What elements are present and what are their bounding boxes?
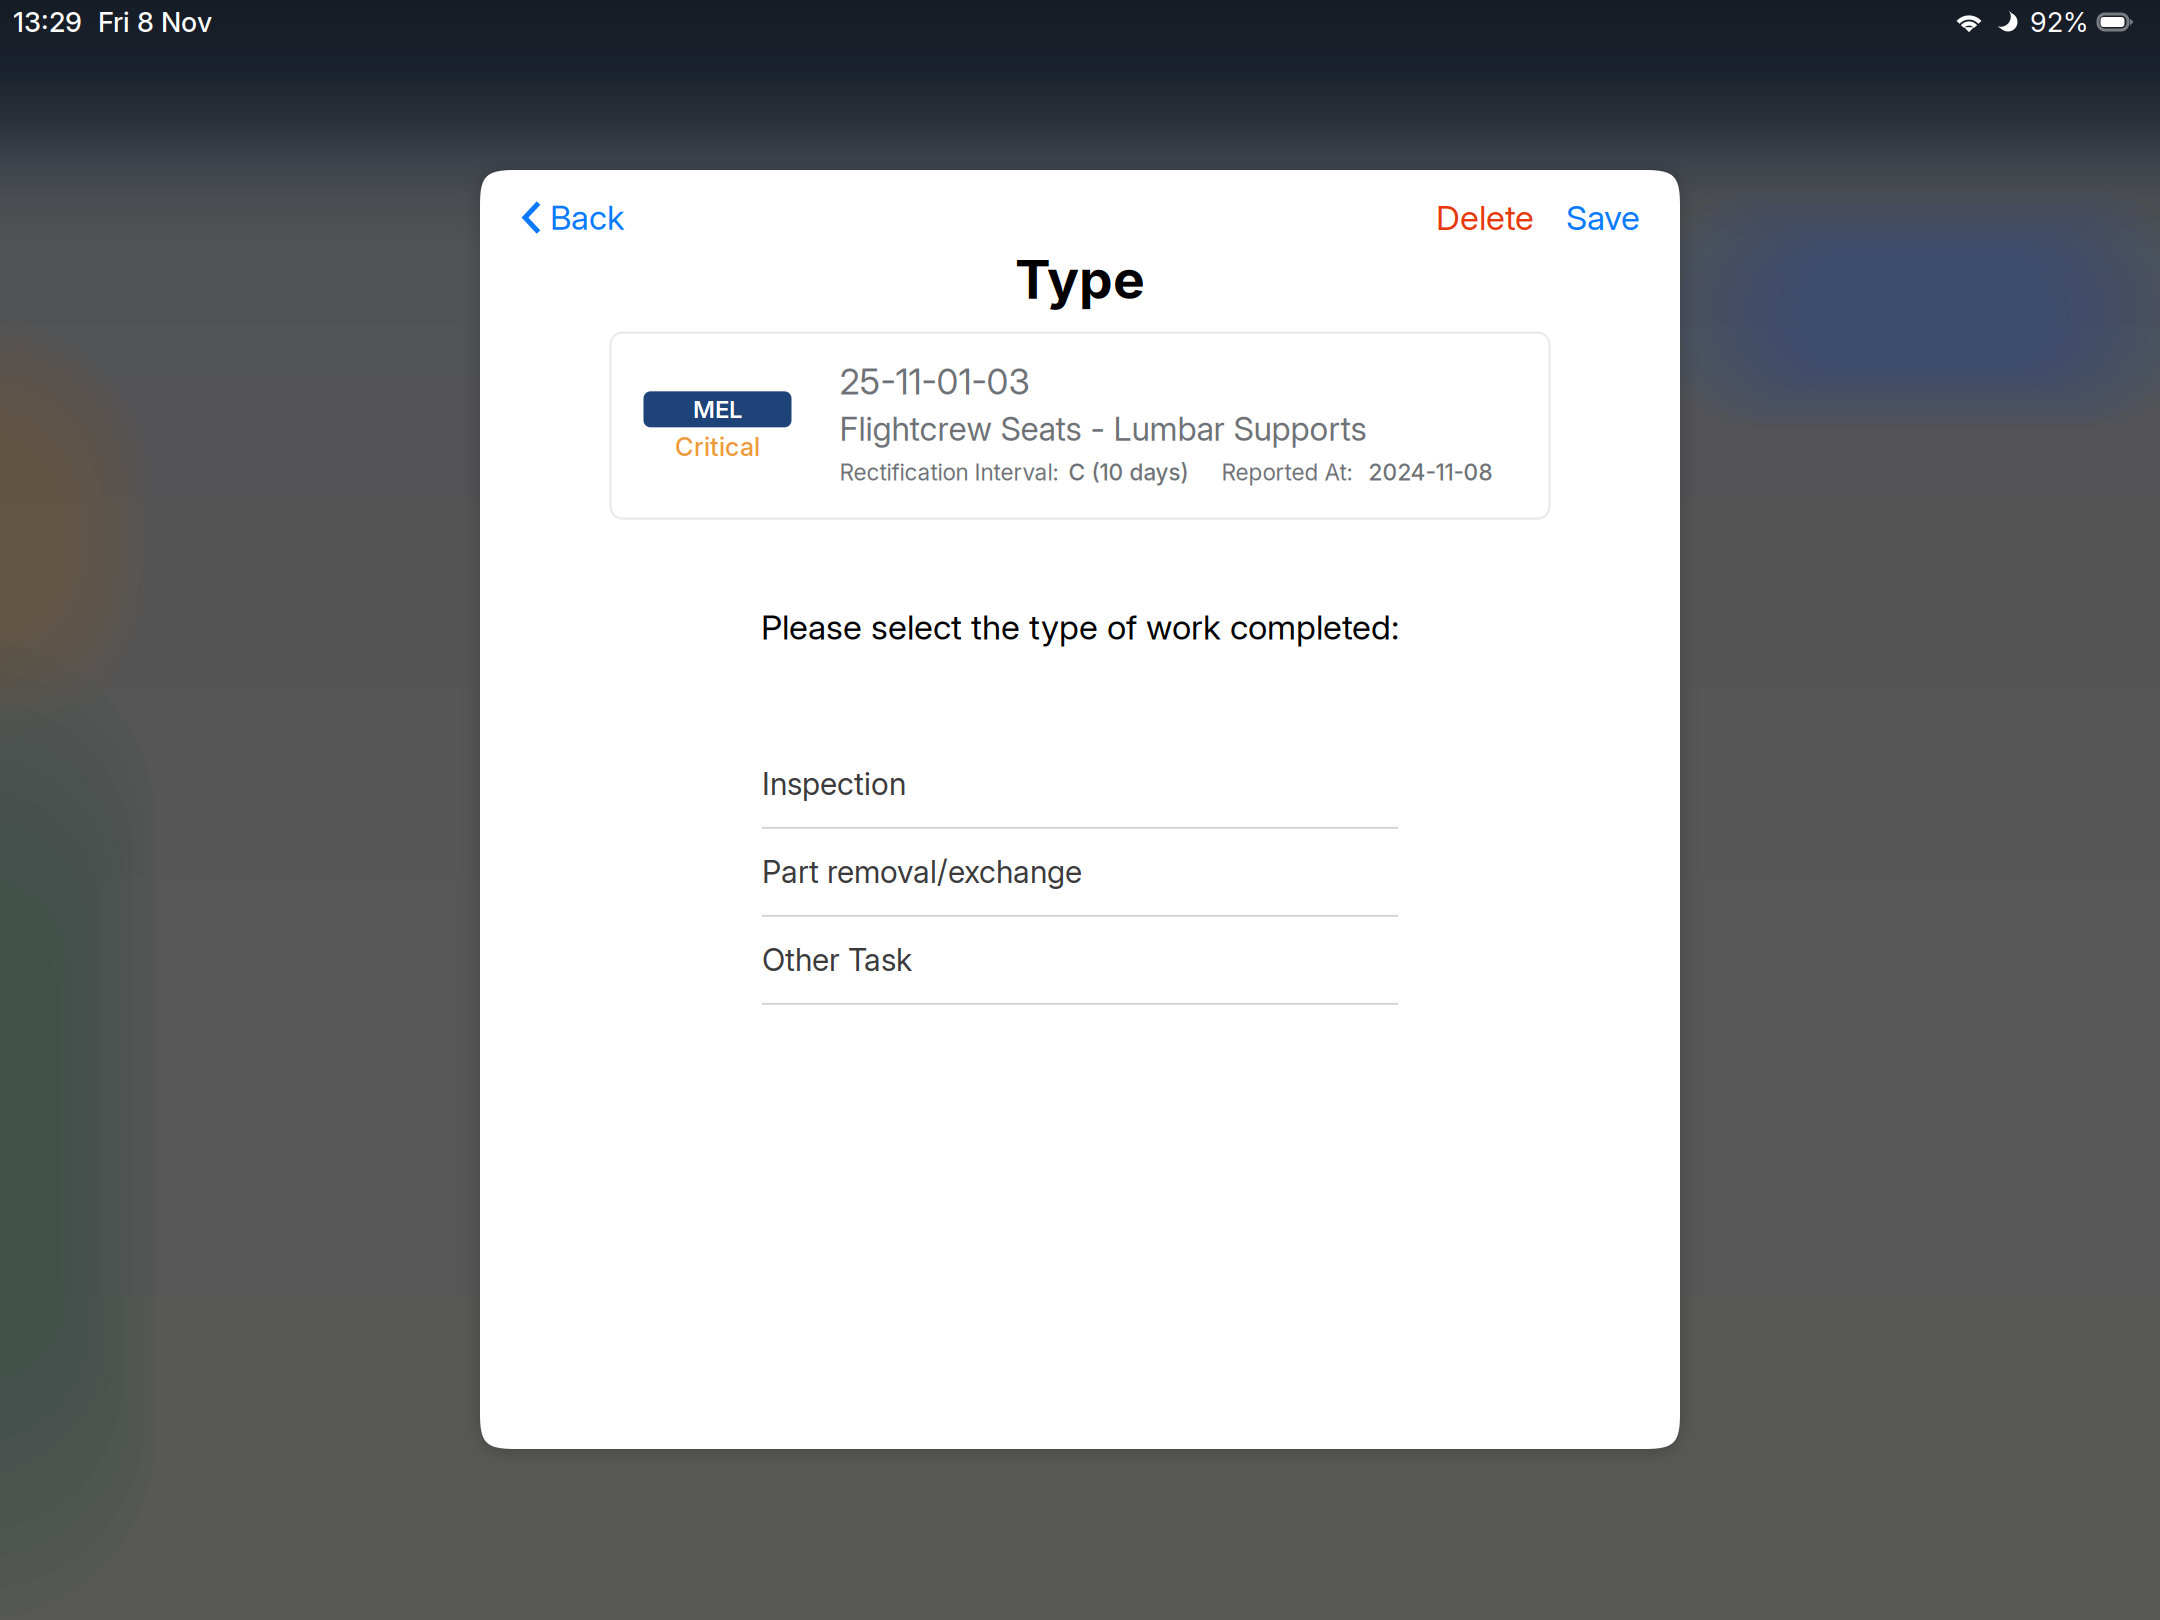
staticText: C (10 days) — [1068, 459, 1188, 486]
staticText: Part removal/exchange — [762, 853, 1082, 890]
staticText: Save — [1566, 197, 1640, 238]
staticText: Other Task — [762, 941, 912, 978]
staticText: Rectification Interval: — [839, 459, 1058, 486]
staticText: Delete — [1436, 197, 1534, 238]
button[interactable]: Inspection — [762, 741, 1398, 829]
staticText: Flightcrew Seats - Lumbar Supports — [839, 409, 1366, 449]
button[interactable]: Delete — [1436, 185, 1534, 250]
staticText: MEL — [693, 395, 742, 424]
staticText: Inspection — [762, 765, 906, 802]
staticText: Type — [1015, 247, 1145, 312]
staticText: 92% — [2030, 5, 2088, 39]
staticText: 25-11-01-03 — [839, 360, 1029, 403]
staticText: 2024-11-08 — [1368, 459, 1492, 486]
staticText: Please select the type of work completed… — [761, 607, 1399, 648]
staticText: 13:29 — [13, 5, 82, 39]
staticText: Fri 8 Nov — [98, 5, 212, 39]
button[interactable]: Other Task — [762, 917, 1398, 1005]
staticText: Reported At: — [1221, 459, 1352, 486]
button[interactable]: Part removal/exchange — [762, 829, 1398, 917]
button[interactable]: Back — [522, 185, 624, 250]
button[interactable]: Save — [1566, 185, 1640, 250]
staticText: Back — [550, 197, 624, 238]
staticText: Critical — [675, 431, 760, 462]
